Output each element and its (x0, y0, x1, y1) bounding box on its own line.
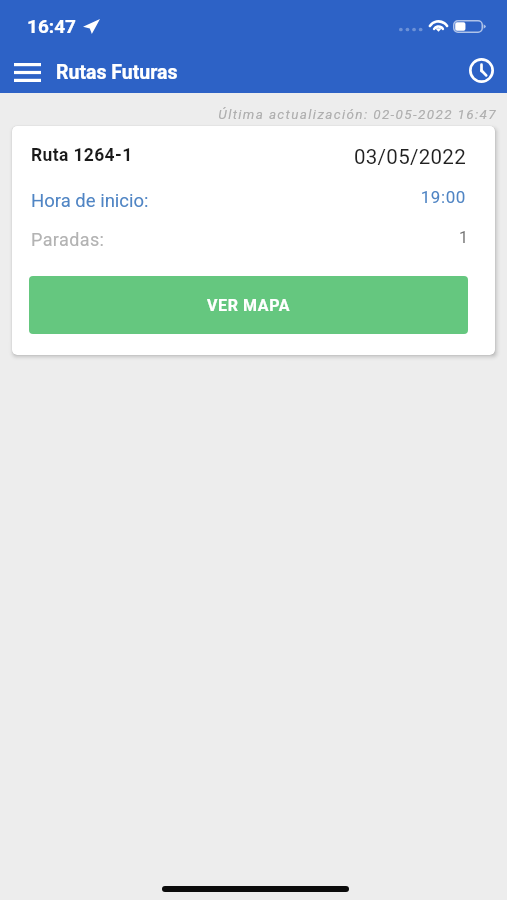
staticText: 16:47 (27, 15, 76, 37)
staticText: 03/05/2022 (12, 145, 466, 169)
staticText: Última actualización: 02-05-2022 16:47 (0, 106, 497, 122)
staticText: Paradas: (31, 229, 105, 250)
staticText: 19:00 (12, 187, 466, 207)
button[interactable]: Ruta 1264-1 (12, 126, 495, 355)
button[interactable]: Open navigation menu (4, 53, 50, 91)
button[interactable]: Route history (462, 51, 501, 89)
staticText: Hora de inicio: (31, 190, 149, 212)
staticText: 1 (12, 228, 468, 247)
button[interactable]: VER MAPA (29, 276, 468, 334)
staticText: Ruta 1264-1 (31, 145, 133, 166)
staticText: VER MAPA (207, 296, 291, 315)
staticText: Rutas Futuras (56, 61, 178, 84)
